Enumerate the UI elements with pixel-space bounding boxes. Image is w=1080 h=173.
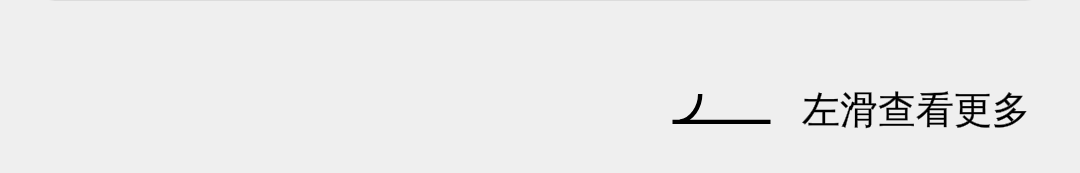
button[interactable]: Swipe left for more: [660, 80, 1040, 136]
staticText: 左滑查看更多: [802, 86, 1030, 134]
other: Swipe left for more: [668, 80, 784, 128]
staticText: 左滑查看更多: [802, 86, 1030, 134]
